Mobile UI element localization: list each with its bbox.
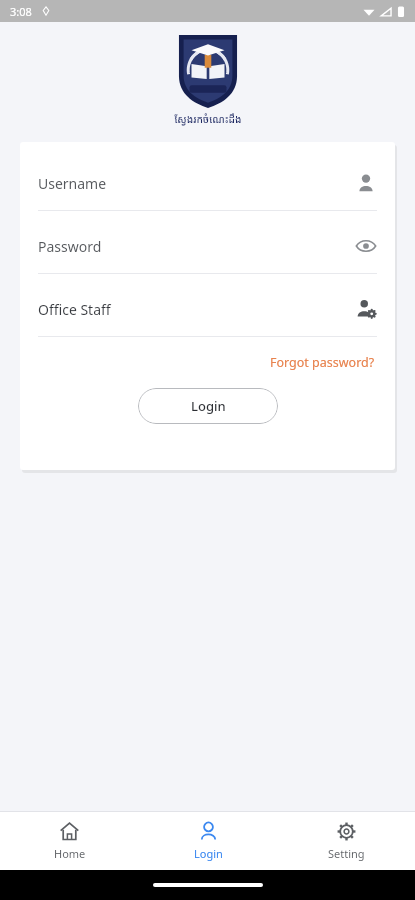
button[interactable]: Login xyxy=(138,388,278,424)
staticText: Office Staff xyxy=(38,300,355,319)
other: Select role xyxy=(355,298,377,320)
other: Username xyxy=(355,172,377,194)
button[interactable]: Forgot password? xyxy=(268,351,377,374)
button[interactable]: Office Staff xyxy=(38,298,377,320)
button[interactable]: Username xyxy=(38,172,377,194)
staticText: Setting xyxy=(328,846,365,861)
staticText: Home xyxy=(54,846,86,861)
button[interactable]: Login xyxy=(139,812,277,870)
staticText: Password xyxy=(38,237,355,256)
other: Show password xyxy=(355,235,377,257)
button[interactable]: Setting xyxy=(277,812,415,870)
staticText: Forgot password? xyxy=(270,354,375,371)
button[interactable]: Password xyxy=(38,235,377,257)
staticText: Login xyxy=(194,846,223,861)
staticText: Login xyxy=(191,397,226,415)
staticText: 3:08 xyxy=(10,4,32,19)
staticText: ស្វែងរកចំណេះដឹង xyxy=(174,112,242,126)
staticText: Username xyxy=(38,174,355,193)
button[interactable]: Home xyxy=(0,812,139,870)
